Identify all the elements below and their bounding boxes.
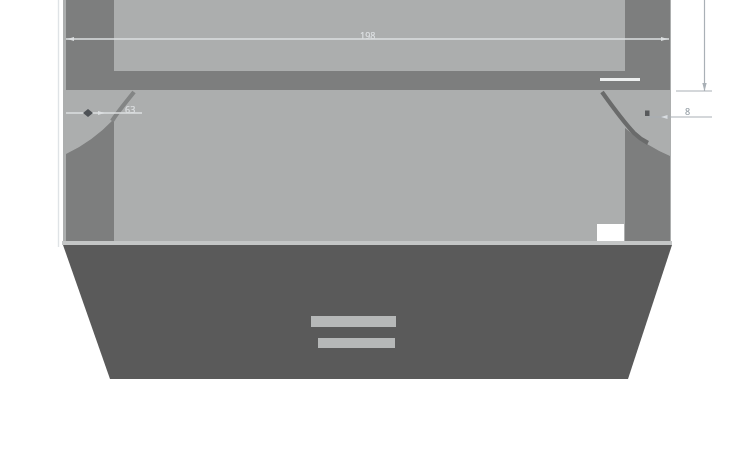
staticText: 198 (360, 29, 376, 41)
staticText: 8 (685, 105, 691, 117)
staticText: 63 (125, 103, 136, 115)
